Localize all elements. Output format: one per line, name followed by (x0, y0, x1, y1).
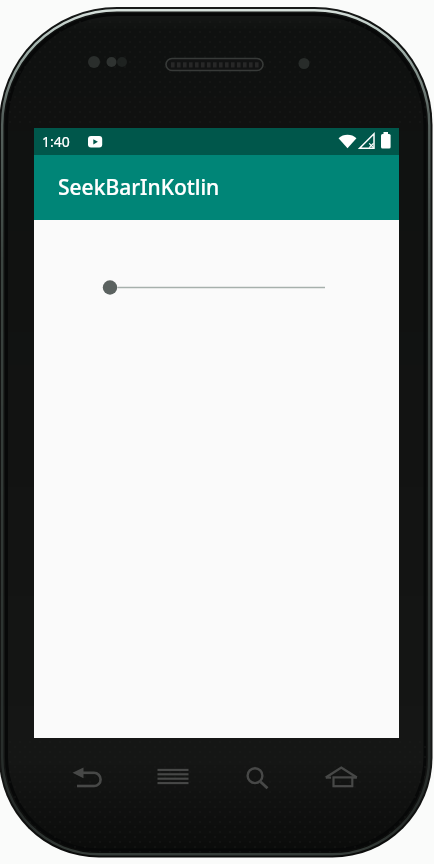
button[interactable] (236, 755, 280, 799)
staticText: SeekBarInKotlin (58, 173, 220, 202)
button[interactable]: SeekBarInKotlin (34, 155, 399, 220)
button[interactable] (319, 755, 363, 799)
staticText: 1:40 (42, 132, 70, 151)
button[interactable] (151, 755, 195, 799)
button[interactable] (64, 755, 108, 799)
button[interactable] (82, 265, 342, 310)
